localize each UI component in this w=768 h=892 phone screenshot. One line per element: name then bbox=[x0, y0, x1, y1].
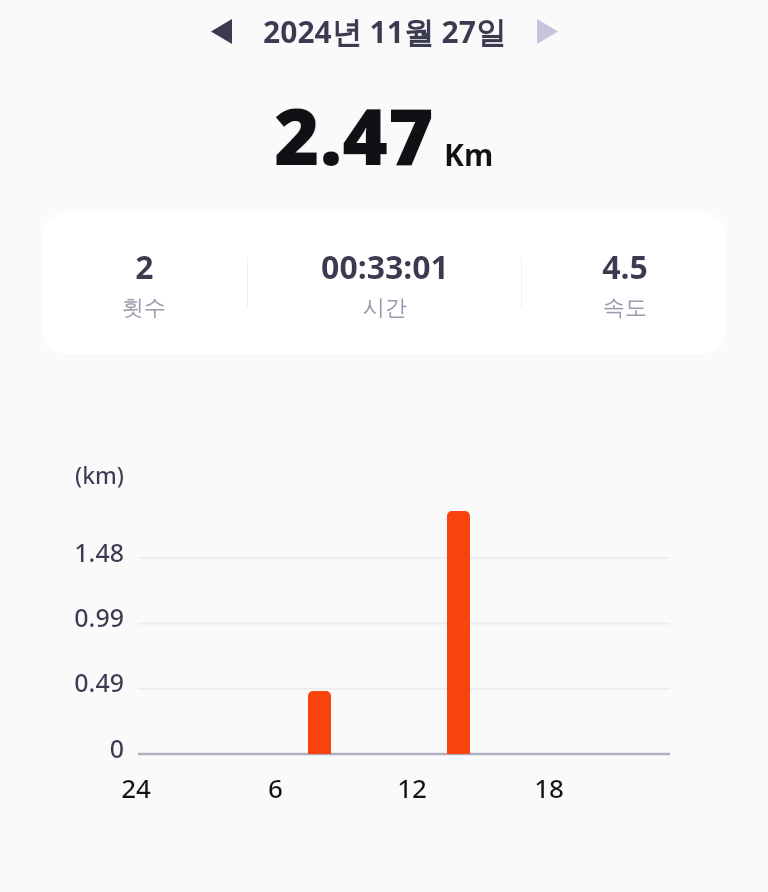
staticText: 2024년 11월 27일 bbox=[263, 11, 506, 52]
staticText: 12 bbox=[397, 770, 427, 805]
staticText: 0 bbox=[109, 731, 124, 765]
staticText: 횟수 bbox=[122, 294, 166, 322]
button[interactable]: 00:33:01 bbox=[248, 212, 521, 354]
staticText: 00:33:01 bbox=[321, 245, 449, 289]
staticText: 2 bbox=[135, 245, 154, 289]
staticText: 2.47 bbox=[274, 82, 434, 188]
staticText: 0.49 bbox=[74, 665, 124, 699]
button[interactable]: 다음 날짜 bbox=[522, 6, 572, 56]
button[interactable]: 2 bbox=[41, 212, 247, 354]
staticText: 24 bbox=[121, 770, 151, 805]
button[interactable]: 이전 날짜 bbox=[196, 6, 246, 56]
staticText: 시간 bbox=[363, 294, 407, 322]
staticText: 0.99 bbox=[74, 600, 124, 634]
staticText: 1.48 bbox=[74, 535, 124, 569]
button[interactable]: 4.5 bbox=[522, 212, 727, 354]
staticText: 6 bbox=[268, 770, 283, 805]
staticText: 18 bbox=[534, 770, 564, 805]
button[interactable]: 2 bbox=[41, 212, 727, 354]
staticText: 4.5 bbox=[602, 245, 648, 289]
staticText: Km bbox=[444, 134, 494, 175]
staticText: (km) bbox=[75, 459, 124, 490]
staticText: 속도 bbox=[603, 294, 647, 322]
